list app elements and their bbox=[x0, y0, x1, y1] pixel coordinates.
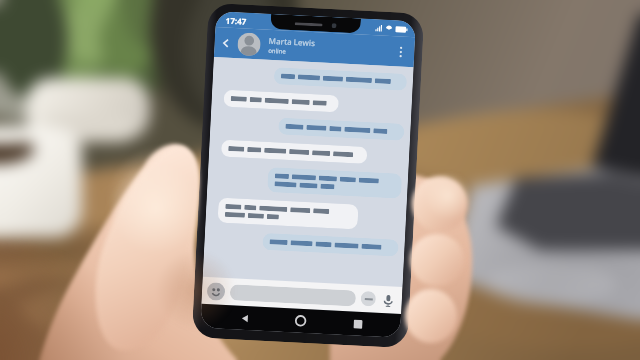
button[interactable]: Recent apps bbox=[344, 311, 371, 336]
button[interactable] bbox=[262, 233, 399, 257]
button[interactable]: Back bbox=[231, 305, 258, 331]
button[interactable] bbox=[223, 90, 339, 112]
button[interactable]: Message input bbox=[230, 284, 356, 307]
button[interactable]: Voice message bbox=[378, 291, 397, 310]
button[interactable] bbox=[278, 117, 405, 141]
button[interactable]: More options bbox=[390, 41, 411, 62]
button[interactable] bbox=[274, 67, 407, 91]
button[interactable] bbox=[221, 140, 367, 164]
button[interactable] bbox=[217, 197, 359, 230]
staticText: Marta Lewis bbox=[268, 35, 316, 48]
staticText: 17:47 bbox=[225, 15, 247, 27]
button[interactable] bbox=[267, 167, 402, 199]
button[interactable]: Attach bbox=[360, 291, 376, 306]
button[interactable]: Contact avatar bbox=[237, 32, 261, 56]
button[interactable]: Emoji bbox=[207, 282, 225, 301]
staticText: online bbox=[268, 47, 286, 56]
button[interactable]: Back bbox=[214, 31, 237, 54]
button[interactable]: Home bbox=[287, 308, 314, 333]
